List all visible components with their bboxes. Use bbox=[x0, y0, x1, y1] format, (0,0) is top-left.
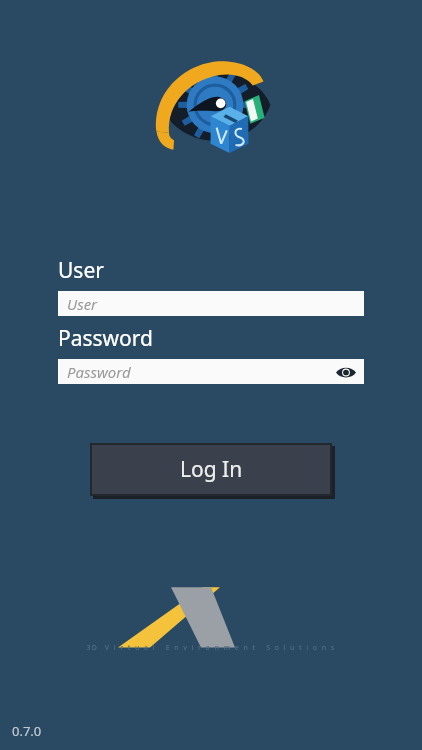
staticText: User bbox=[67, 294, 98, 314]
staticText: Password bbox=[58, 324, 153, 353]
staticText: 3D V i r t u a l E n v i r o n m e n t S… bbox=[0, 643, 422, 653]
staticText: User bbox=[58, 256, 104, 285]
staticText: Log In bbox=[180, 455, 243, 484]
button[interactable]: Log In bbox=[92, 445, 330, 494]
staticText: Password bbox=[67, 362, 131, 382]
staticText: 0.7.0 bbox=[12, 722, 42, 740]
button[interactable]: Toggle password visibility bbox=[334, 362, 358, 382]
button[interactable]: Password bbox=[58, 359, 364, 384]
button[interactable]: User bbox=[58, 291, 364, 316]
